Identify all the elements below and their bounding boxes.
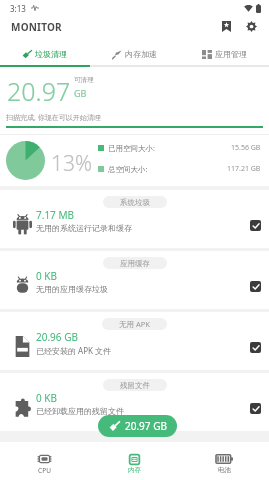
staticText: 0 KB <box>36 269 58 283</box>
staticText: CPU <box>38 466 51 475</box>
staticText: 内存加速 <box>125 49 157 59</box>
staticText: 20.97 GB <box>125 419 167 433</box>
button[interactable]: Select <box>250 220 261 231</box>
staticText: 20.97 <box>7 74 71 108</box>
staticText: 20.96 GB <box>36 330 78 344</box>
button[interactable]: 内存 <box>89 442 179 480</box>
staticText: 电池 <box>218 466 231 474</box>
button[interactable]: 残留文件 <box>0 373 269 431</box>
staticText: GB <box>74 87 87 99</box>
button[interactable]: 系统垃圾 <box>0 190 269 248</box>
button[interactable]: Select <box>250 342 261 353</box>
staticText: 系统垃圾 <box>120 198 150 207</box>
button[interactable]: 无用 APK <box>0 312 269 370</box>
staticText: 已经卸载应用的残留文件 <box>36 406 124 416</box>
staticText: 117.21 GB <box>227 164 261 174</box>
staticText: 15.56 GB <box>231 143 261 153</box>
button[interactable]: 内存加速 <box>89 36 179 65</box>
staticText: 无用的系统运行记录和缓存 <box>36 223 132 233</box>
button[interactable]: CPU <box>0 442 89 480</box>
staticText: 总空间大小: <box>108 164 148 174</box>
button[interactable]: 20.97 GB <box>98 415 177 437</box>
button[interactable]: 应用缓存 <box>0 251 269 309</box>
staticText: 3:13 <box>10 3 26 14</box>
button[interactable]: Settings <box>242 17 260 35</box>
staticText: 已经安装的 APK 文件 <box>36 345 112 356</box>
button[interactable]: Bookmark <box>217 17 235 35</box>
staticText: 扫描完成, 你现在可以开始清理 <box>6 113 101 123</box>
staticText: MONITOR <box>11 20 62 34</box>
staticText: 无用的应用缓存垃圾 <box>36 284 108 294</box>
staticText: 垃圾清理 <box>35 49 67 59</box>
staticText: 7.17 MB <box>36 208 75 222</box>
staticText: 应用缓存 <box>120 259 150 268</box>
button[interactable]: 电池 <box>179 442 269 480</box>
staticText: 内存 <box>128 466 141 474</box>
button[interactable]: 应用管理 <box>179 36 269 65</box>
button[interactable]: Select <box>250 403 261 414</box>
staticText: 应用管理 <box>215 49 247 59</box>
staticText: 已用空间大小: <box>108 143 156 153</box>
staticText: 13% <box>51 149 93 178</box>
staticText: 可清理 <box>74 76 94 84</box>
button[interactable]: Select <box>250 281 261 292</box>
button[interactable]: 垃圾清理 <box>0 36 89 65</box>
staticText: 无用 APK <box>119 319 150 329</box>
staticText: 0 KB <box>36 391 58 405</box>
staticText: 残留文件 <box>120 381 150 390</box>
